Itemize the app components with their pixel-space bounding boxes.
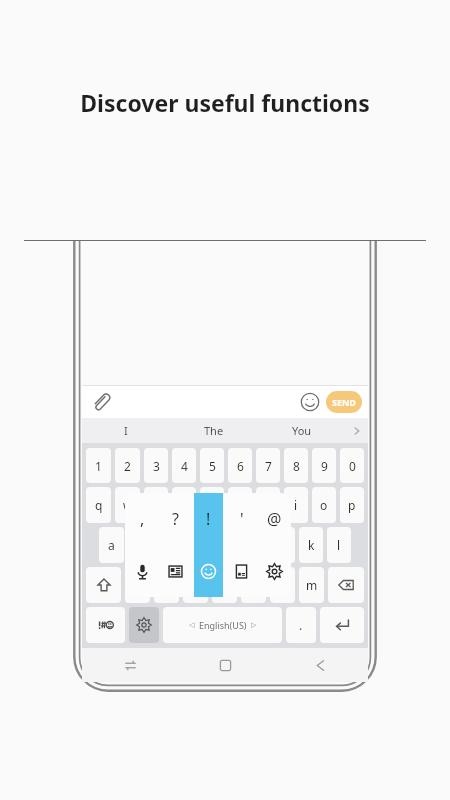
button[interactable]: SEND [326,391,362,413]
button[interactable]: Enter [320,607,364,643]
button[interactable]: Voice input [125,545,159,597]
button[interactable]: o [312,487,336,523]
button[interactable]: i [284,487,308,523]
button[interactable]: Backspace [328,567,364,603]
staticText: ◁ [189,621,195,629]
button[interactable]: w [115,487,140,523]
button[interactable]: p [340,487,364,523]
staticText: 9 [321,458,328,474]
staticText: ▷ [251,621,257,629]
staticText: SEND [332,396,356,408]
staticText: l [337,537,341,553]
button[interactable]: 1 [86,448,111,483]
button[interactable]: z [125,567,150,603]
staticText: ! [206,508,211,530]
button[interactable]: m [299,567,324,603]
button[interactable]: Symbols [86,607,125,643]
staticText: a [108,537,115,553]
button[interactable]: c [183,567,208,603]
button[interactable]: x [154,567,179,603]
button[interactable]: You [258,418,346,443]
button[interactable]: r [172,487,196,523]
button[interactable]: Emoji [300,392,320,412]
button[interactable]: Home [178,648,273,682]
staticText: @ [267,508,282,530]
button[interactable]: ! [192,493,225,545]
button[interactable]: Back [273,648,368,682]
staticText: ' [240,508,244,530]
button[interactable]: ? [159,493,192,545]
button[interactable]: Settings [258,545,291,597]
button[interactable]: 6 [228,448,252,483]
staticText: 5 [209,458,216,474]
button[interactable]: I [82,418,170,443]
button[interactable]: ◁ [163,607,282,643]
staticText: 2 [124,458,131,474]
button[interactable]: Attach file [90,391,112,413]
button[interactable]: l [327,527,351,563]
button[interactable]: The [170,418,258,443]
staticText: m [306,577,318,593]
button[interactable]: 8 [284,448,308,483]
button[interactable]: ' [225,493,258,545]
button[interactable]: More suggestions [346,418,368,443]
button[interactable]: j [271,527,295,563]
staticText: 8 [293,458,300,474]
button[interactable]: Clipboard [159,545,192,597]
button[interactable]: q [86,487,111,523]
button[interactable]: 9 [312,448,336,483]
button[interactable]: Emoji [192,545,225,597]
button[interactable]: 4 [172,448,196,483]
button[interactable]: t [200,487,224,523]
button[interactable]: 2 [115,448,140,483]
staticText: Discover useful functions [0,87,450,118]
staticText: i [294,497,298,513]
staticText: ? [172,508,179,530]
button[interactable]: , [125,493,159,545]
staticText: w [123,497,133,513]
staticText: 0 [349,458,356,474]
staticText: 7 [265,458,272,474]
button[interactable]: 5 [200,448,224,483]
button[interactable]: a [99,527,124,563]
button[interactable]: Settings [129,607,159,643]
button[interactable]: 7 [256,448,280,483]
button[interactable]: k [299,527,323,563]
button[interactable]: u [256,487,280,523]
staticText: 1 [95,458,102,474]
staticText: 6 [237,458,244,474]
button[interactable]: n [270,567,295,603]
staticText: z [135,577,141,593]
button[interactable]: Stickers [225,545,258,597]
button[interactable]: g [215,527,239,563]
button[interactable]: 0 [340,448,364,483]
button[interactable]: v [212,567,237,603]
button[interactable]: 3 [144,448,168,483]
staticText: I [124,423,128,438]
staticText: q [95,497,103,513]
button[interactable]: b [241,567,266,603]
staticText: . [299,617,303,633]
button[interactable]: @ [258,493,291,545]
button[interactable]: y [228,487,252,523]
button[interactable]: Shift [86,567,121,603]
staticText: English(US) [199,619,247,631]
staticText: 3 [153,458,160,474]
button[interactable]: Recents [82,648,178,682]
button[interactable]: . [286,607,316,643]
staticText: x [163,577,170,593]
button[interactable]: f [186,527,211,563]
